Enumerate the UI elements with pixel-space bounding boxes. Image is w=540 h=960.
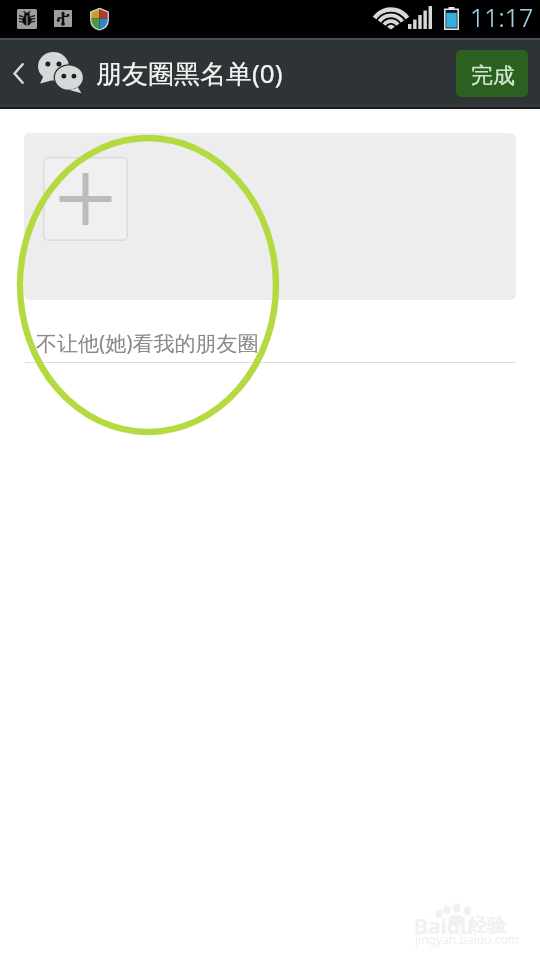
button[interactable]: Back xyxy=(4,38,90,109)
staticText: 11:17 xyxy=(470,0,534,34)
button[interactable]: 不让他(她)看我的朋友圈 xyxy=(0,300,540,362)
staticText: Baidu xyxy=(414,912,474,941)
staticText: 完成 xyxy=(471,62,515,90)
staticText: 经验 xyxy=(468,914,506,938)
button[interactable]: Add xyxy=(43,157,128,241)
staticText: 朋友圈黑名单(0) xyxy=(96,55,283,91)
staticText: 不让他(她)看我的朋友圈 xyxy=(36,329,259,358)
button[interactable]: 完成 xyxy=(456,50,528,97)
staticText: jingyan.baidu.com xyxy=(415,931,519,947)
